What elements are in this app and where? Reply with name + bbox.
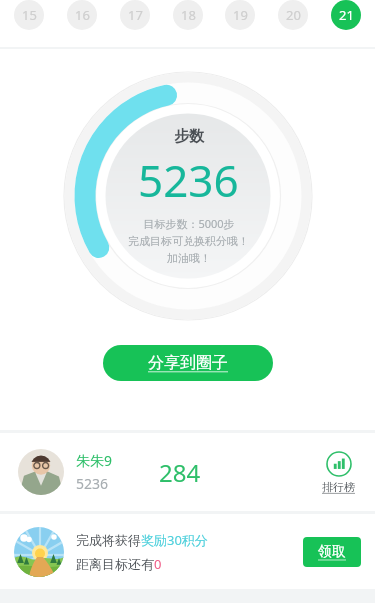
button[interactable]: 18 [173,0,203,30]
button[interactable]: 16 [67,0,97,30]
button[interactable]: 排行榜 Leaderboard [320,449,357,496]
staticText: 20 [286,6,301,24]
staticText: 5236 [76,474,109,493]
button[interactable]: 朱朱9 [0,433,375,511]
button[interactable]: 15 [14,0,44,30]
button[interactable]: 分享到圈子 [103,345,273,381]
staticText: 步数 [174,127,204,146]
staticText: 17 [128,6,143,24]
staticText: 目标步数：5000步 [143,216,235,231]
staticText: 16 [75,6,90,24]
staticText: 排行榜 [322,480,355,494]
button[interactable]: 领取 [303,537,361,567]
staticText: 领取 [318,543,346,561]
staticText: 加油哦！ [167,251,211,265]
staticText: 距离目标还有0 [76,555,162,573]
button[interactable]: 21 [331,0,361,30]
button[interactable]: 17 [120,0,150,30]
button[interactable]: 19 [225,0,255,30]
staticText: 完成目标可兑换积分哦！ [128,234,249,248]
staticText: 21 [339,6,354,24]
staticText: 朱朱9 [76,451,113,470]
staticText: 5236 [138,150,239,210]
staticText: 15 [22,6,37,24]
staticText: 19 [233,6,248,24]
button[interactable]: 20 [278,0,308,30]
staticText: 完成将获得奖励30积分 [76,531,208,549]
staticText: 分享到圈子 [148,353,228,373]
staticText: 284 [159,456,201,489]
staticText: 18 [181,6,196,24]
